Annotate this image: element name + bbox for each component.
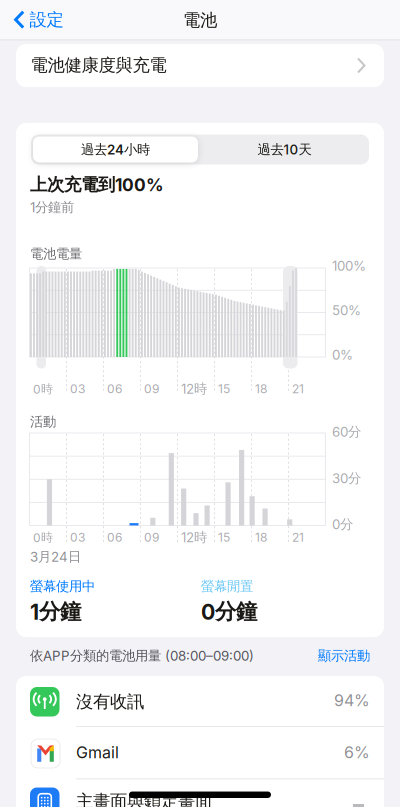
staticText: 21 [292,530,304,544]
staticText: 0分 [332,516,353,532]
staticText: 上次充電到100% [30,174,164,195]
button[interactable]: 過去10天 [202,136,367,162]
staticText: 100% [332,258,366,274]
staticText: 21 [292,382,304,396]
staticText: 0時 [33,382,53,396]
staticText: 螢幕閒置 [201,578,253,594]
staticText: 設定 [29,9,63,30]
staticText: 50% [332,302,361,318]
staticText: 06 [107,382,122,396]
staticText: 09 [144,530,159,544]
staticText: 0時 [33,530,53,545]
button[interactable]: 沒有收訊 [16,676,384,726]
staticText: 過去10天 [257,141,311,158]
staticText: 15 [218,530,230,544]
staticText: 18 [255,382,267,396]
staticText: 1分鐘前 [30,199,74,215]
staticText: 螢幕使用中 [30,578,95,594]
button[interactable]: 顯示活動 [260,647,370,664]
staticText: 94% [334,691,370,710]
staticText: 03 [70,530,85,544]
staticText: 18 [255,530,267,544]
button[interactable]: 返回設定 [14,9,63,30]
staticText: 6% [344,743,370,762]
button[interactable]: 主畫面與鎖定畫面 [16,778,384,807]
staticText: 15 [218,382,230,396]
staticText: 主畫面與鎖定畫面 [76,790,212,807]
staticText: 電池電量 [30,245,82,262]
staticText: 過去24小時 [81,141,150,158]
staticText: 1分鐘 [30,598,81,625]
staticText: 顯示活動 [318,647,370,664]
staticText: 09 [144,382,159,396]
staticText: 活動 [30,413,56,430]
staticText: 60分 [332,423,361,440]
staticText: 12時 [181,529,207,545]
staticText: Gmail [76,743,119,762]
staticText: 30分 [332,470,361,486]
staticText: 03 [70,382,85,396]
button[interactable]: 過去24小時 [33,136,198,162]
staticText: 12時 [181,380,207,397]
staticText: 06 [107,530,122,544]
staticText: 電池健康度與充電 [30,54,166,76]
button[interactable]: 電池健康度與充電 [16,44,384,87]
staticText: 電池 [183,9,217,31]
button[interactable]: Gmail [16,726,384,778]
staticText: 0分鐘 [201,598,257,625]
staticText: 0% [332,347,353,363]
staticText: 3月24日 [30,548,81,565]
staticText: 依APP分類的電池用量 (08:00–09:00) [30,647,254,664]
staticText: 沒有收訊 [76,691,144,712]
